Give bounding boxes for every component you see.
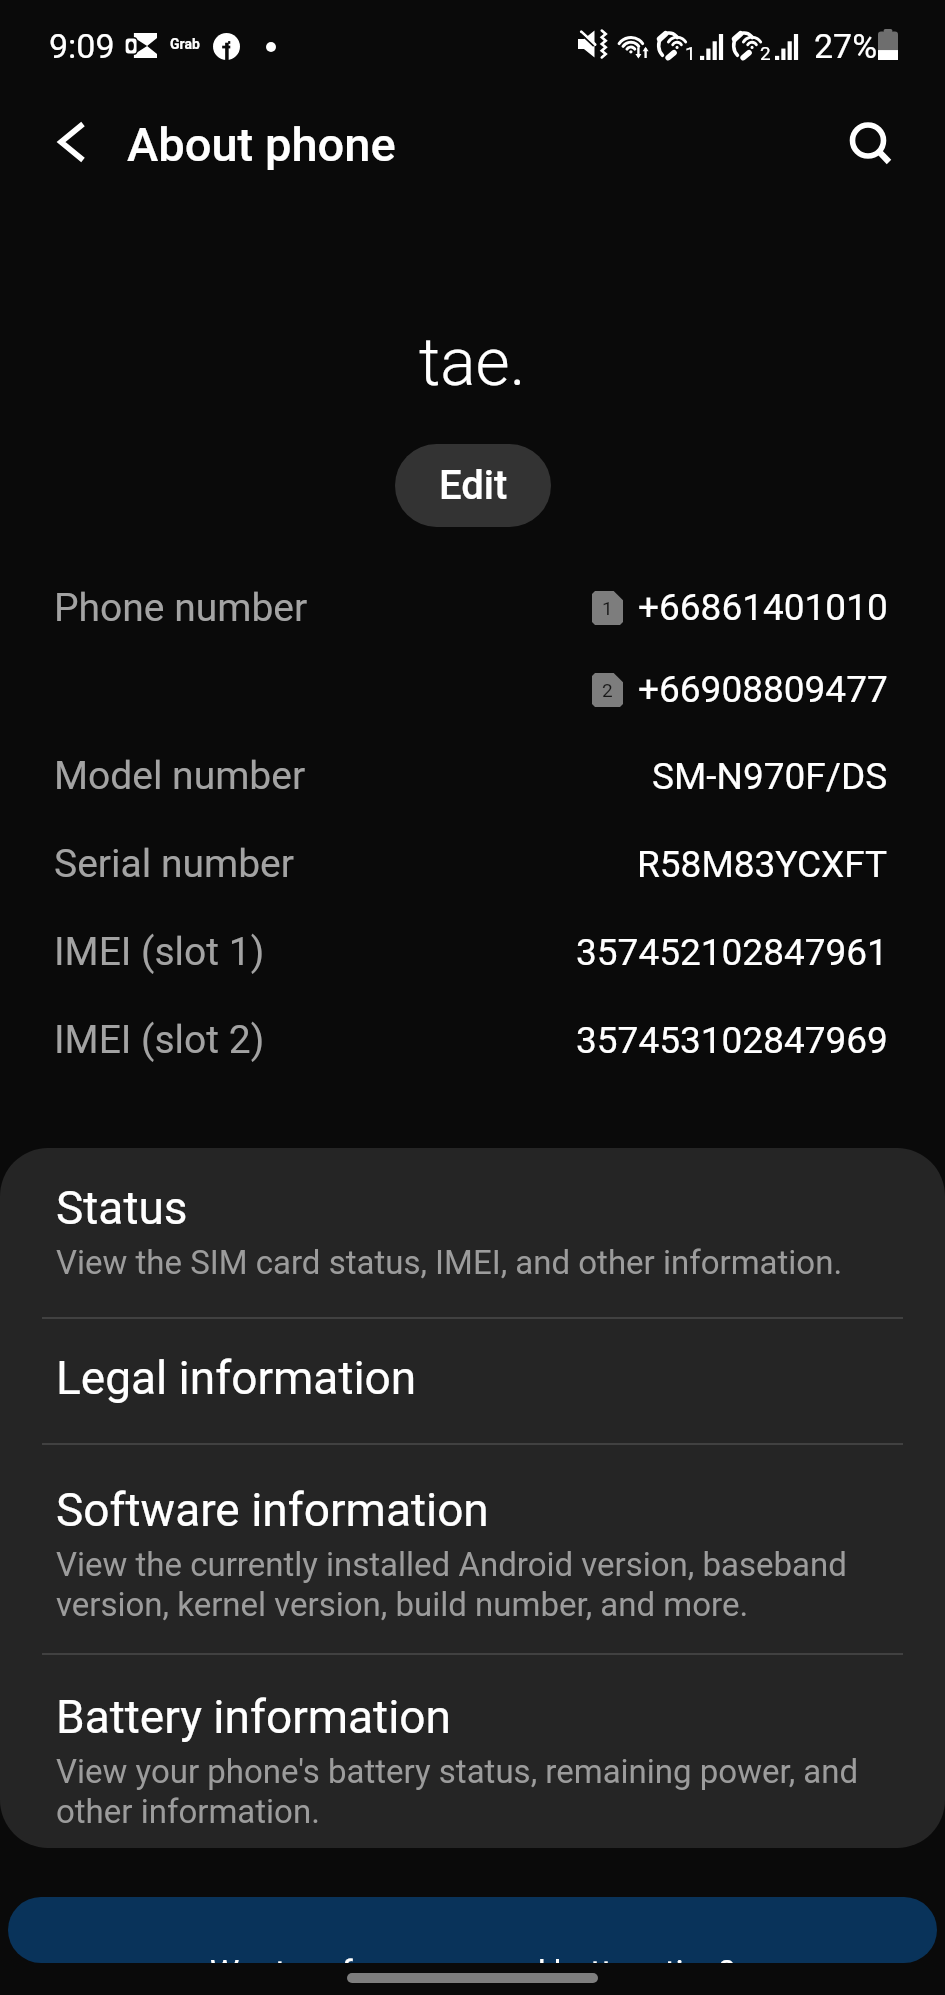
staticText: tae.: [419, 324, 526, 401]
staticText: 1: [602, 597, 613, 619]
staticText: Status: [56, 1181, 188, 1235]
staticText: Want performance and battery tips?: [210, 1953, 735, 1963]
button[interactable]: IMEI (slot 2): [0, 996, 945, 1084]
staticText: IMEI (slot 2): [54, 1017, 265, 1063]
staticText: 1: [685, 42, 696, 64]
staticText: View the SIM card status, IMEI, and othe…: [56, 1243, 843, 1282]
staticText: Legal information: [56, 1351, 417, 1405]
staticText: SM-N970F/DS: [652, 755, 888, 798]
staticText: Model number: [54, 753, 306, 799]
staticText: Edit: [439, 462, 508, 509]
staticText: Grab: [170, 36, 200, 52]
staticText: About phone: [127, 117, 396, 172]
button[interactable]: Navigate up: [36, 107, 108, 179]
staticText: Software information: [56, 1483, 489, 1537]
button[interactable]: Legal information: [0, 1319, 945, 1443]
staticText: +66908809477: [638, 668, 888, 711]
button[interactable]: Phone number: [0, 569, 945, 646]
button[interactable]: Software information: [0, 1445, 945, 1653]
staticText: 27%: [814, 26, 878, 66]
button[interactable]: Serial number: [0, 820, 945, 908]
staticText: Battery information: [56, 1690, 451, 1744]
button[interactable]: IMEI (slot 1): [0, 908, 945, 996]
staticText: View the currently installed Android ver…: [56, 1545, 895, 1624]
staticText: Serial number: [54, 841, 294, 887]
staticText: 2: [760, 42, 771, 64]
button[interactable]: Want performance and battery tips?: [8, 1897, 937, 1963]
button[interactable]: Battery information: [0, 1655, 945, 1848]
button[interactable]: Status: [0, 1148, 945, 1317]
staticText: R58M83YCXFT: [637, 843, 888, 886]
staticText: 357453102847969: [576, 1019, 888, 1062]
staticText: Phone number: [54, 585, 308, 631]
staticText: 357452102847961: [576, 931, 888, 974]
button[interactable]: Edit: [395, 444, 551, 527]
staticText: 2: [602, 679, 613, 701]
staticText: 9:09: [49, 26, 115, 66]
button[interactable]: Model number: [0, 732, 945, 820]
staticText: View your phone's battery status, remain…: [56, 1752, 895, 1831]
staticText: IMEI (slot 1): [54, 929, 265, 975]
staticText: +66861401010: [638, 586, 888, 629]
button[interactable]: Search: [833, 105, 909, 181]
